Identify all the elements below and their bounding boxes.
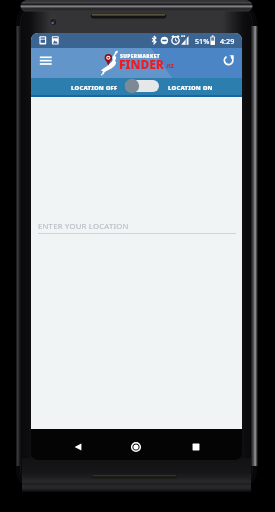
- button[interactable]: Menu: [31, 49, 58, 78]
- button[interactable]: LOCATION OFF: [71, 84, 118, 92]
- button[interactable]: Refresh: [216, 49, 242, 78]
- staticText: SUPERMARKET: [120, 53, 161, 60]
- button[interactable]: LOCATION ON: [168, 84, 213, 92]
- staticText: ENTER YOUR LOCATION: [38, 221, 129, 231]
- button[interactable]: Back: [65, 434, 91, 460]
- button[interactable]: Location toggle: [125, 80, 159, 92]
- staticText: 4:29: [220, 36, 235, 46]
- button[interactable]: Recents: [183, 434, 209, 460]
- staticText: FINDER: [119, 56, 164, 72]
- staticText: .nz: [165, 62, 174, 70]
- button[interactable]: Home: [123, 434, 149, 460]
- staticText: 51%: [195, 36, 210, 46]
